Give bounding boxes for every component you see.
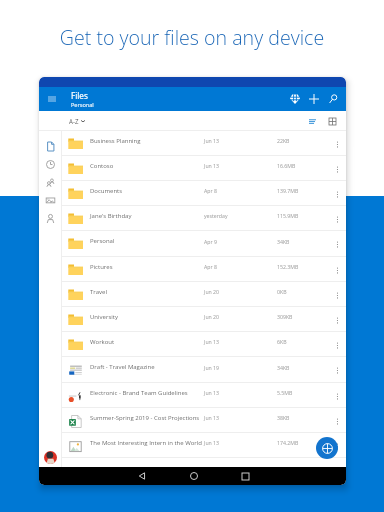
staticText: 5.5MB	[277, 389, 330, 396]
button[interactable]: Business Planning	[62, 131, 346, 156]
staticText: Apr 8	[204, 187, 277, 194]
staticText: Personal	[71, 101, 94, 109]
staticText: Documents	[90, 187, 204, 195]
button[interactable]: Travel	[62, 282, 346, 307]
staticText: 139.7MB	[277, 187, 330, 194]
button[interactable]: Home	[185, 467, 203, 485]
staticText: Apr 8	[204, 263, 277, 270]
button[interactable]: Photos	[39, 191, 61, 209]
staticText: Jun 13	[204, 414, 277, 421]
button[interactable]: Me	[39, 209, 61, 227]
button[interactable]: Personal	[62, 231, 346, 257]
staticText: Draft - Travel Magazine	[90, 363, 204, 371]
button[interactable]: More options	[330, 288, 344, 302]
button[interactable]: Add	[303, 87, 324, 111]
staticText: Personal	[90, 237, 204, 245]
button[interactable]: Pictures	[62, 257, 346, 282]
button[interactable]: Menu	[43, 87, 61, 111]
button[interactable]: More options	[330, 187, 344, 201]
button[interactable]: More options	[330, 389, 344, 403]
button[interactable]: Grid view	[324, 111, 340, 131]
staticText: Workout	[90, 338, 204, 346]
button[interactable]: Recents	[236, 467, 254, 485]
button[interactable]: Search	[322, 87, 343, 111]
staticText: 34KB	[277, 238, 330, 245]
staticText: 152.3MB	[277, 263, 330, 270]
button[interactable]: Summer-Spring 2019 - Cost Projections	[62, 408, 346, 433]
staticText: Summer-Spring 2019 - Cost Projections	[90, 414, 204, 422]
staticText: 38KB	[277, 414, 330, 421]
staticText: Jun 19	[204, 364, 277, 371]
staticText: 174.2MB	[277, 439, 330, 446]
staticText: Jun 13	[204, 162, 277, 169]
button[interactable]: More options	[330, 414, 344, 428]
button[interactable]: More options	[330, 439, 344, 453]
staticText: Get to your files on any device	[0, 24, 384, 51]
button[interactable]: More options	[330, 313, 344, 327]
staticText: A-Z	[69, 117, 79, 125]
staticText: Jun 20	[204, 288, 277, 295]
button[interactable]: More options	[330, 338, 344, 352]
button[interactable]: Create	[316, 437, 338, 459]
button[interactable]: Account	[44, 451, 57, 464]
staticText: Jun 13	[204, 338, 277, 345]
button[interactable]: Shared	[39, 173, 61, 191]
staticText: 309KB	[277, 313, 330, 320]
button[interactable]: More options	[330, 363, 344, 377]
staticText: Pictures	[90, 263, 204, 271]
staticText: Files	[71, 90, 88, 101]
staticText: University	[90, 313, 204, 321]
staticText: 16.6MB	[277, 162, 330, 169]
button[interactable]: Contoso	[62, 156, 346, 181]
button[interactable]: Recent	[39, 155, 61, 173]
staticText: 34KB	[277, 364, 330, 371]
staticText: Apr 9	[204, 238, 277, 245]
button[interactable]: Draft - Travel Magazine	[62, 357, 346, 383]
button[interactable]: More options	[330, 212, 344, 226]
button[interactable]: More options	[330, 263, 344, 277]
button[interactable]: More options	[330, 162, 344, 176]
button[interactable]: More options	[330, 137, 344, 151]
button[interactable]: Electronic - Brand Team Guidelines	[62, 383, 346, 408]
button[interactable]: Workout	[62, 332, 346, 357]
staticText: Jane's Birthday	[90, 212, 204, 220]
button[interactable]: University	[62, 307, 346, 332]
staticText: 22KB	[277, 137, 330, 144]
button[interactable]: List view	[304, 111, 320, 131]
staticText: Jun 13	[204, 137, 277, 144]
button[interactable]: Files	[39, 137, 61, 155]
staticText: Business Planning	[90, 137, 204, 145]
staticText: Jun 13	[204, 439, 277, 446]
staticText: Jun 13	[204, 389, 277, 396]
button[interactable]: The Most Interesting Intern in the World	[62, 433, 346, 458]
button[interactable]: Back	[133, 467, 151, 485]
staticText: 6KB	[277, 338, 330, 345]
staticText: Jun 20	[204, 313, 277, 320]
staticText: Contoso	[90, 162, 204, 170]
button[interactable]: Documents	[62, 181, 346, 206]
staticText: Electronic - Brand Team Guidelines	[90, 389, 204, 397]
button[interactable]: A-Z	[66, 111, 88, 131]
button[interactable]: More options	[330, 237, 344, 251]
staticText: 0KB	[277, 288, 330, 295]
staticText: 115.9MB	[277, 212, 330, 219]
staticText: The Most Interesting Intern in the World	[90, 439, 204, 447]
staticText: yesterday	[204, 212, 277, 219]
button[interactable]: OneDrive	[284, 87, 305, 111]
staticText: Travel	[90, 288, 204, 296]
button[interactable]: Jane's Birthday	[62, 206, 346, 231]
